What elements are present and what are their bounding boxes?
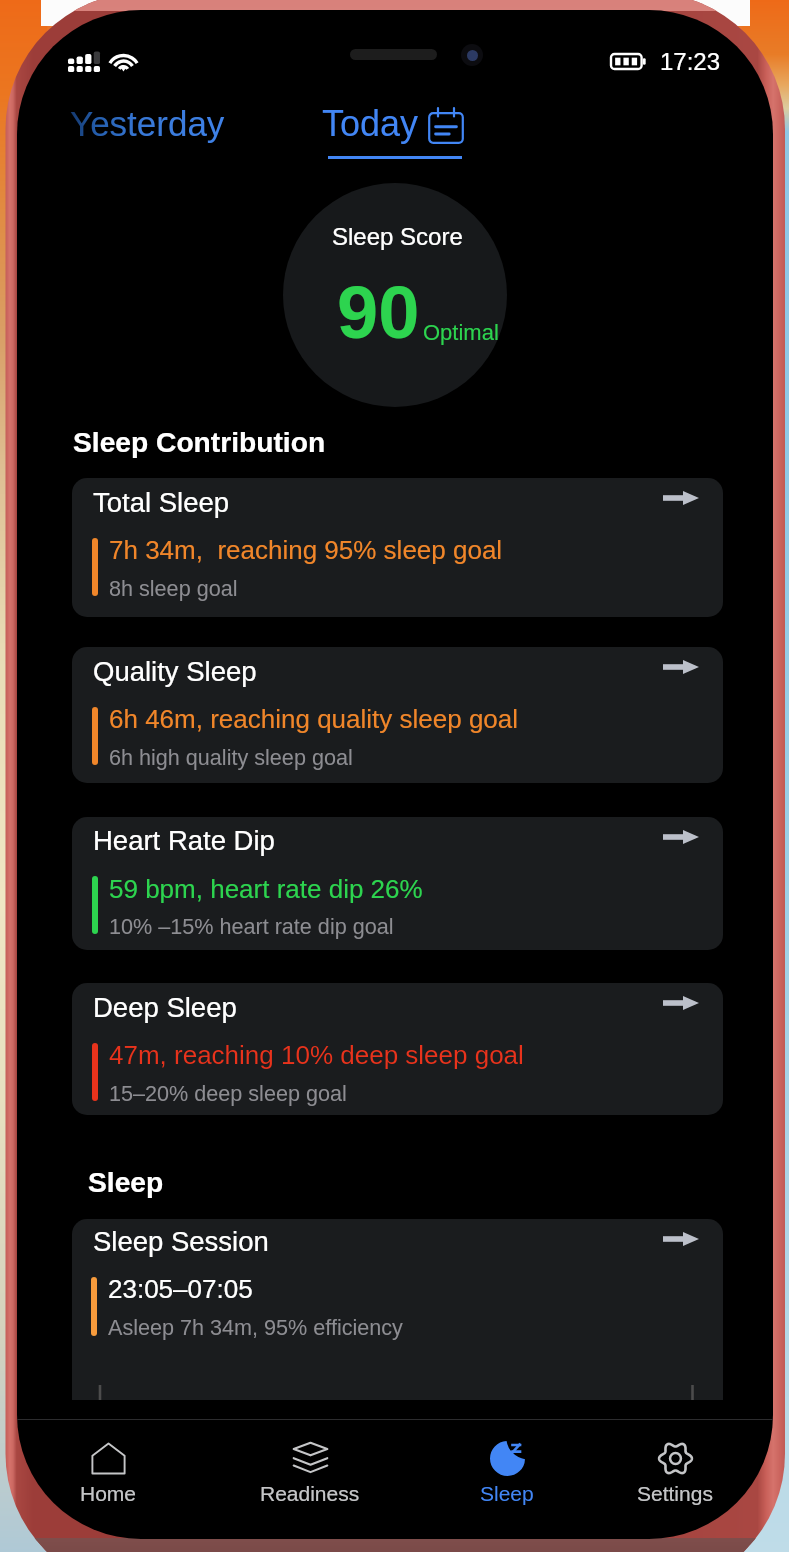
other: Heart Rate Dip details [663,830,699,844]
staticText: Readiness [260,1482,360,1505]
staticText: 8h sleep goal [109,576,238,600]
staticText: Sleep [88,1166,164,1198]
other: Total Sleep details [663,491,699,505]
staticText: 17:23 [660,48,721,75]
staticText: Today [322,103,419,143]
staticText: Sleep Score [332,223,463,250]
staticText: 7h 34m, reaching 95% sleep goal [109,535,503,564]
staticText: Heart Rate Dip [93,825,275,856]
button[interactable] [72,817,723,950]
staticText: 23:05–07:05 [108,1274,253,1303]
button[interactable]: Readiness [216,1420,404,1539]
button[interactable]: Home [17,1420,202,1539]
staticText: 15–20% deep sleep goal [109,1081,347,1105]
staticText: Sleep [480,1482,534,1505]
button[interactable]: Sleep [413,1420,601,1539]
staticText: Settings [637,1482,713,1505]
staticText: Asleep 7h 34m, 95% efficiency [108,1315,403,1339]
button[interactable]: Settings [581,1420,769,1539]
staticText: Home [80,1482,137,1505]
button[interactable]: Yesterday [62,104,234,152]
staticText: 6h 46m, reaching quality sleep goal [109,704,519,733]
staticText: 47m, reaching 10% deep sleep goal [109,1040,524,1069]
button[interactable] [72,647,723,783]
button[interactable]: Today [316,100,478,168]
other: Sleep session details [663,1232,699,1246]
staticText: 90 [337,271,420,354]
staticText: 10% –15% heart rate dip goal [109,914,394,938]
staticText: 6h high quality sleep goal [109,745,353,769]
button[interactable] [72,1219,723,1400]
staticText: Sleep Contribution [73,426,326,458]
staticText: Total Sleep [93,487,230,518]
staticText: Sleep Session [93,1226,269,1257]
staticText: Deep Sleep [93,992,237,1023]
button[interactable] [72,478,723,617]
staticText: Optimal [423,320,499,345]
other: Deep Sleep details [663,996,699,1010]
button[interactable] [72,983,723,1115]
staticText: 59 bpm, heart rate dip 26% [109,874,423,903]
staticText: Quality Sleep [93,656,257,687]
other: Quality Sleep details [663,660,699,674]
staticText: Yesterday [70,104,225,143]
